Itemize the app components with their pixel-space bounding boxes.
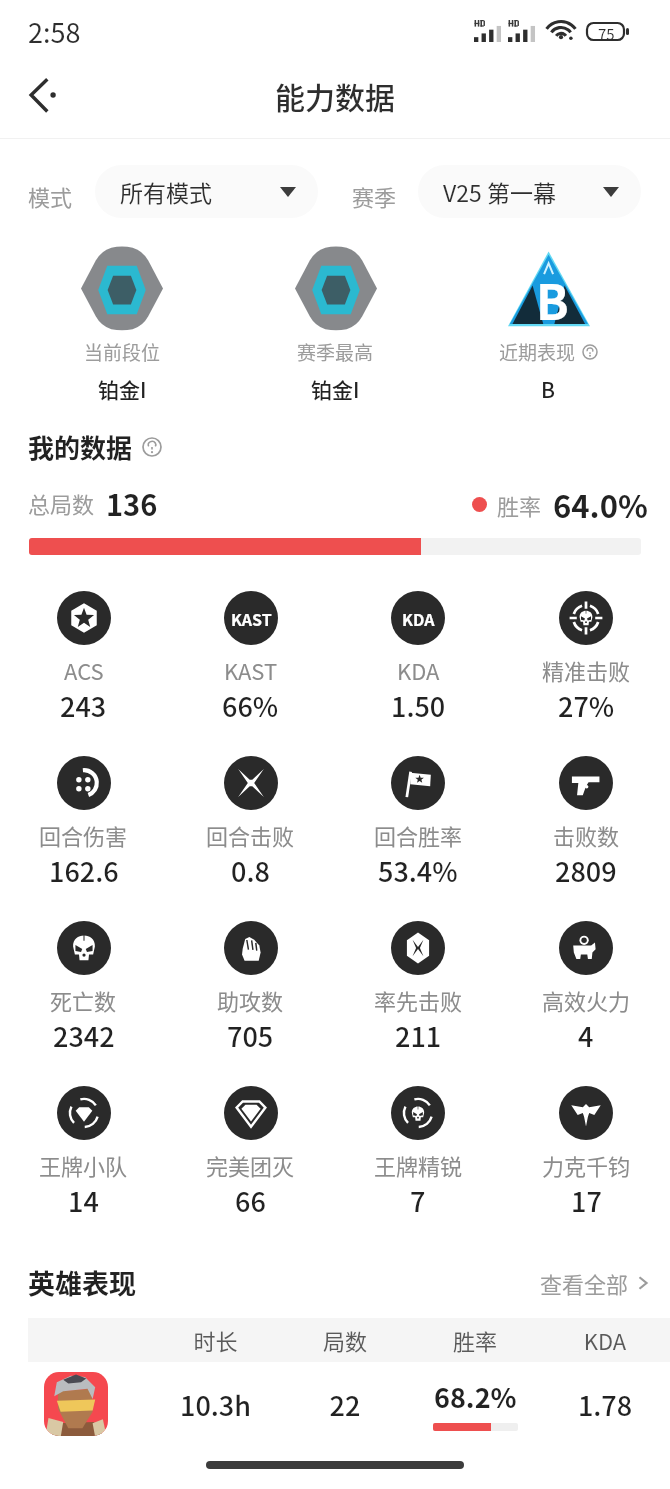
staticText: 王牌小队 bbox=[39, 1149, 128, 1181]
staticText: 705 bbox=[227, 1016, 274, 1055]
staticText: 22 bbox=[280, 1385, 410, 1424]
staticText: 14 bbox=[68, 1181, 99, 1220]
button[interactable]: 王牌小队 bbox=[0, 1086, 167, 1220]
staticText: 精准击败 bbox=[542, 654, 631, 686]
staticText: KAST bbox=[224, 654, 278, 686]
staticText: 王牌精锐 bbox=[374, 1149, 463, 1181]
staticText: ACS bbox=[64, 654, 104, 686]
staticText: 铂金I bbox=[98, 374, 147, 404]
staticText: 完美团灭 bbox=[206, 1149, 295, 1181]
staticText: 助攻数 bbox=[217, 984, 284, 1016]
staticText: 75 bbox=[598, 23, 615, 40]
staticText: 4 bbox=[578, 1016, 594, 1055]
staticText: B bbox=[536, 264, 569, 334]
staticText: 赛季最高 bbox=[297, 338, 374, 366]
staticText: 当前段位 bbox=[84, 338, 161, 366]
staticText: 17 bbox=[571, 1181, 602, 1220]
staticText: KDA bbox=[402, 607, 435, 630]
staticText: 回合伤害 bbox=[39, 819, 128, 851]
staticText: KDA bbox=[540, 1324, 670, 1356]
staticText: 53.4% bbox=[378, 851, 458, 890]
button[interactable]: 王牌精锐 bbox=[334, 1086, 502, 1220]
button[interactable]: B bbox=[442, 247, 655, 404]
staticText: 回合胜率 bbox=[374, 819, 463, 851]
button[interactable]: 回合胜率 bbox=[334, 756, 502, 890]
button[interactable]: 高效火力 bbox=[502, 921, 670, 1055]
staticText: 64.0% bbox=[553, 482, 648, 527]
staticText: 2:58 bbox=[28, 12, 81, 51]
button[interactable]: 击败数 bbox=[502, 756, 670, 890]
button[interactable]: 率先击败 bbox=[334, 921, 502, 1055]
button[interactable]: 所有模式 bbox=[95, 165, 318, 218]
button[interactable]: V25 第一幕 bbox=[418, 165, 641, 218]
staticText: 1.50 bbox=[391, 686, 446, 725]
button[interactable]: 回合伤害 bbox=[0, 756, 167, 890]
button[interactable]: 赛季最高 bbox=[229, 247, 442, 404]
staticText: 胜率 bbox=[410, 1324, 540, 1356]
staticText: 力克千钧 bbox=[542, 1149, 631, 1181]
staticText: 243 bbox=[60, 686, 107, 725]
button[interactable]: 助攻数 bbox=[167, 921, 334, 1055]
button[interactable]: 当前段位 bbox=[15, 247, 229, 404]
staticText: 2809 bbox=[555, 851, 617, 890]
staticText: 68.2% bbox=[434, 1377, 517, 1416]
staticText: 66% bbox=[222, 686, 279, 725]
button[interactable]: 精准击败 bbox=[502, 591, 670, 725]
staticText: 0.8 bbox=[231, 851, 270, 890]
staticText: 所有模式 bbox=[120, 175, 212, 208]
button[interactable]: KAST bbox=[167, 591, 334, 725]
staticText: 7 bbox=[410, 1181, 426, 1220]
staticText: 时长 bbox=[151, 1324, 280, 1356]
staticText: 查看全部 bbox=[540, 1267, 629, 1299]
staticText: 胜率 bbox=[497, 489, 542, 521]
staticText: KAST bbox=[231, 607, 272, 630]
staticText: 2342 bbox=[53, 1016, 115, 1055]
button[interactable]: 死亡数 bbox=[0, 921, 167, 1055]
staticText: 10.3h bbox=[151, 1385, 280, 1424]
button[interactable]: Back bbox=[14, 66, 72, 124]
button[interactable]: 力克千钧 bbox=[502, 1086, 670, 1220]
staticText: 模式 bbox=[28, 180, 73, 212]
staticText: 1.78 bbox=[540, 1385, 670, 1424]
staticText: 击败数 bbox=[553, 819, 620, 851]
staticText: 66 bbox=[235, 1181, 266, 1220]
staticText: V25 第一幕 bbox=[443, 175, 556, 208]
staticText: 死亡数 bbox=[50, 984, 117, 1016]
staticText: KDA bbox=[397, 654, 440, 686]
staticText: 回合击败 bbox=[206, 819, 295, 851]
staticText: 211 bbox=[395, 1016, 442, 1055]
button[interactable]: 回合击败 bbox=[167, 756, 334, 890]
staticText: 27% bbox=[558, 686, 615, 725]
staticText: 总局数 bbox=[28, 487, 95, 519]
staticText: B bbox=[541, 374, 556, 404]
staticText: 赛季 bbox=[352, 180, 397, 212]
staticText: 高效火力 bbox=[542, 984, 631, 1016]
button[interactable]: KDA bbox=[334, 591, 502, 725]
staticText: 能力数据 bbox=[275, 74, 395, 117]
staticText: 率先击败 bbox=[374, 984, 463, 1016]
button[interactable]: ACS bbox=[0, 591, 167, 725]
staticText: 162.6 bbox=[49, 851, 119, 890]
staticText: 英雄表现 bbox=[28, 1263, 136, 1302]
staticText: 局数 bbox=[280, 1324, 410, 1356]
button[interactable]: 完美团灭 bbox=[167, 1086, 334, 1220]
staticText: 我的数据 bbox=[28, 428, 133, 466]
button[interactable]: 查看全部 bbox=[540, 1267, 651, 1299]
staticText: 铂金I bbox=[311, 374, 360, 404]
button[interactable]: 10.3h bbox=[0, 1358, 670, 1450]
staticText: 136 bbox=[106, 482, 158, 524]
staticText: 近期表现 bbox=[499, 338, 576, 366]
